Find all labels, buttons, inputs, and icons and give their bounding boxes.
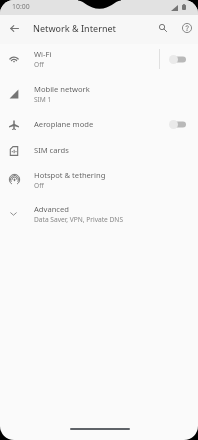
button[interactable]: Search xyxy=(153,18,173,38)
staticText: Off xyxy=(34,60,44,69)
staticText: Hotspot & tethering xyxy=(34,170,106,180)
button[interactable]: Wi‑Fi xyxy=(0,41,198,76)
button[interactable]: Hotspot & tethering xyxy=(0,163,198,196)
button[interactable]: Toggle Aeroplane mode xyxy=(165,114,191,134)
staticText: Mobile network xyxy=(34,84,90,94)
staticText: SIM cards xyxy=(34,145,69,155)
button[interactable]: Mobile network xyxy=(0,76,198,111)
staticText: SIM 1 xyxy=(34,95,52,104)
staticText: Aeroplane mode xyxy=(34,119,94,129)
button[interactable]: Toggle Wi‑Fi xyxy=(165,49,191,69)
button[interactable]: Aeroplane mode xyxy=(0,111,198,137)
staticText: Off xyxy=(34,181,44,190)
button[interactable]: Help xyxy=(177,18,197,38)
staticText: 10:00 xyxy=(12,2,30,11)
button[interactable]: SIM cards xyxy=(0,137,198,163)
button[interactable]: Back xyxy=(4,18,24,38)
button[interactable]: Advanced xyxy=(0,196,198,231)
staticText: Network & Internet xyxy=(33,22,116,34)
staticText: Wi‑Fi xyxy=(34,49,52,59)
staticText: Data Saver, VPN, Private DNS xyxy=(34,215,124,224)
staticText: Advanced xyxy=(34,204,69,214)
